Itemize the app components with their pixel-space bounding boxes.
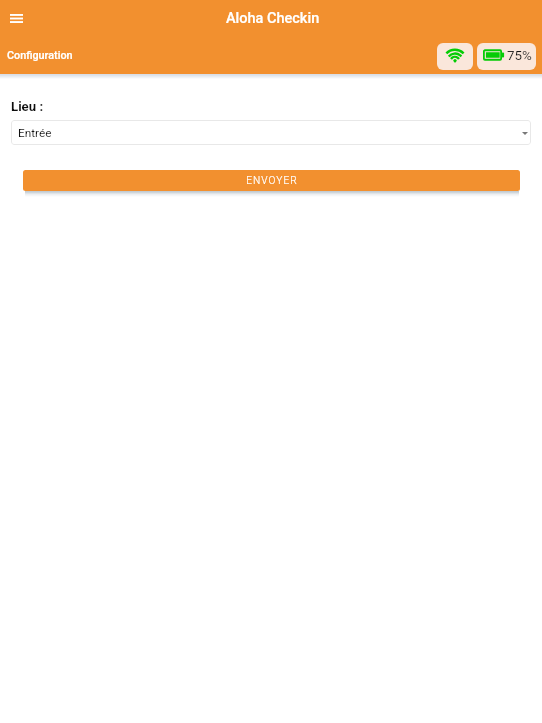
staticText: 75% — [507, 48, 532, 64]
staticText: Aloha Checkin — [226, 10, 320, 27]
button[interactable]: Wifi status — [437, 43, 473, 70]
button[interactable]: Battery 75 percent — [477, 43, 536, 70]
staticText: Configuration — [7, 49, 73, 62]
staticText: Entrée — [18, 126, 52, 140]
button[interactable]: ENVOYER — [23, 170, 520, 191]
button[interactable]: Entrée — [11, 120, 531, 145]
staticText: ENVOYER — [246, 175, 298, 187]
button[interactable]: Open navigation menu — [3, 5, 30, 32]
staticText: Lieu : — [11, 99, 44, 114]
